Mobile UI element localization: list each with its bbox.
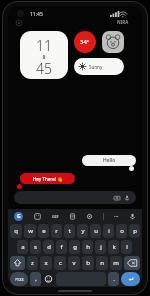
button[interactable]: b <box>82 256 94 270</box>
staticText: r <box>55 227 58 235</box>
button[interactable]: u <box>90 224 101 238</box>
button[interactable]: w <box>24 224 36 238</box>
button[interactable]: ?123 <box>10 272 28 286</box>
button[interactable]: Clipboard <box>69 213 76 220</box>
button[interactable]: More options <box>114 214 119 219</box>
staticText: c <box>59 259 62 267</box>
button[interactable]: 34° <box>74 31 96 53</box>
other: Camera <box>114 195 120 201</box>
button[interactable]: a <box>17 240 28 254</box>
staticText: e <box>42 227 46 235</box>
button[interactable]: Hey There! 👋 <box>20 173 75 184</box>
button[interactable]: 11 <box>20 31 68 79</box>
button[interactable]: p <box>129 224 140 238</box>
staticText: g <box>73 243 77 251</box>
button[interactable]: Shift <box>10 256 25 270</box>
staticText: l <box>126 243 128 251</box>
staticText: f <box>60 243 63 251</box>
button[interactable]: e <box>38 224 49 238</box>
button[interactable]: j <box>95 240 106 254</box>
staticText: y <box>81 227 85 235</box>
staticText: h <box>86 243 90 251</box>
button[interactable]: k <box>108 240 119 254</box>
button[interactable]: Pet widget <box>102 31 124 53</box>
staticText: G <box>17 213 21 220</box>
button[interactable]: GIF <box>52 214 59 219</box>
staticText: o <box>120 227 124 235</box>
button[interactable]: o <box>116 224 127 238</box>
button[interactable]: f <box>56 240 67 254</box>
button[interactable]: v <box>68 256 80 270</box>
button[interactable]: Google search <box>14 212 23 221</box>
button[interactable]: t <box>64 224 75 238</box>
button[interactable]: Backspace <box>124 256 140 270</box>
staticText: a <box>21 243 25 251</box>
staticText: 34° <box>80 38 90 46</box>
button[interactable]: n <box>96 256 108 270</box>
button[interactable]: g <box>69 240 80 254</box>
staticText: ••• <box>114 214 119 219</box>
staticText: GIF <box>52 214 59 219</box>
staticText: j <box>100 243 102 251</box>
staticText: x <box>44 259 48 267</box>
button[interactable]: z <box>27 256 38 270</box>
button[interactable]: Stickers <box>34 213 41 220</box>
button[interactable]: y <box>77 224 88 238</box>
staticText: p <box>133 227 137 235</box>
staticText: NIRA <box>117 19 129 25</box>
staticText: v <box>72 259 76 267</box>
staticText: z <box>31 259 34 267</box>
button[interactable]: d <box>43 240 54 254</box>
button[interactable]: h <box>82 240 93 254</box>
staticText: i <box>108 227 110 235</box>
button[interactable]: x <box>40 256 52 270</box>
staticText: 11 <box>36 36 52 55</box>
button[interactable]: c <box>54 256 66 270</box>
button[interactable]: , <box>30 272 41 286</box>
staticText: d <box>47 243 51 251</box>
other: Voice input <box>124 195 130 201</box>
staticText: 11:45 <box>30 11 43 18</box>
button[interactable]: Hello <box>82 155 136 166</box>
staticText: 45 <box>36 59 52 74</box>
button[interactable]: Voice typing <box>129 213 136 220</box>
button[interactable]: m <box>110 256 122 270</box>
button[interactable]: Enter <box>121 272 140 286</box>
button[interactable]: s <box>30 240 41 254</box>
button[interactable]: i <box>103 224 114 238</box>
button[interactable]: Camera <box>14 191 136 204</box>
button[interactable]: Sunny <box>74 58 124 75</box>
button[interactable]: Settings <box>86 213 93 220</box>
button[interactable]: Emoji <box>43 272 54 286</box>
staticText: u <box>94 227 98 235</box>
button[interactable]: . <box>108 272 119 286</box>
staticText: , <box>35 275 37 283</box>
staticText: w <box>28 227 33 235</box>
button[interactable]: q <box>10 224 22 238</box>
button[interactable]: r <box>51 224 62 238</box>
staticText: k <box>112 243 116 251</box>
staticText: t <box>68 227 71 235</box>
staticText: Hey There! 👋 <box>33 176 63 182</box>
staticText: n <box>100 259 104 267</box>
staticText: m <box>113 259 119 267</box>
staticText: ?123 <box>15 277 24 282</box>
button[interactable]: l <box>121 240 132 254</box>
staticText: Hello <box>103 157 116 164</box>
staticText: b <box>86 259 90 267</box>
staticText: Sunny <box>89 64 103 70</box>
staticText: s <box>34 243 37 251</box>
staticText: . <box>113 275 115 283</box>
staticText: q <box>14 227 18 235</box>
